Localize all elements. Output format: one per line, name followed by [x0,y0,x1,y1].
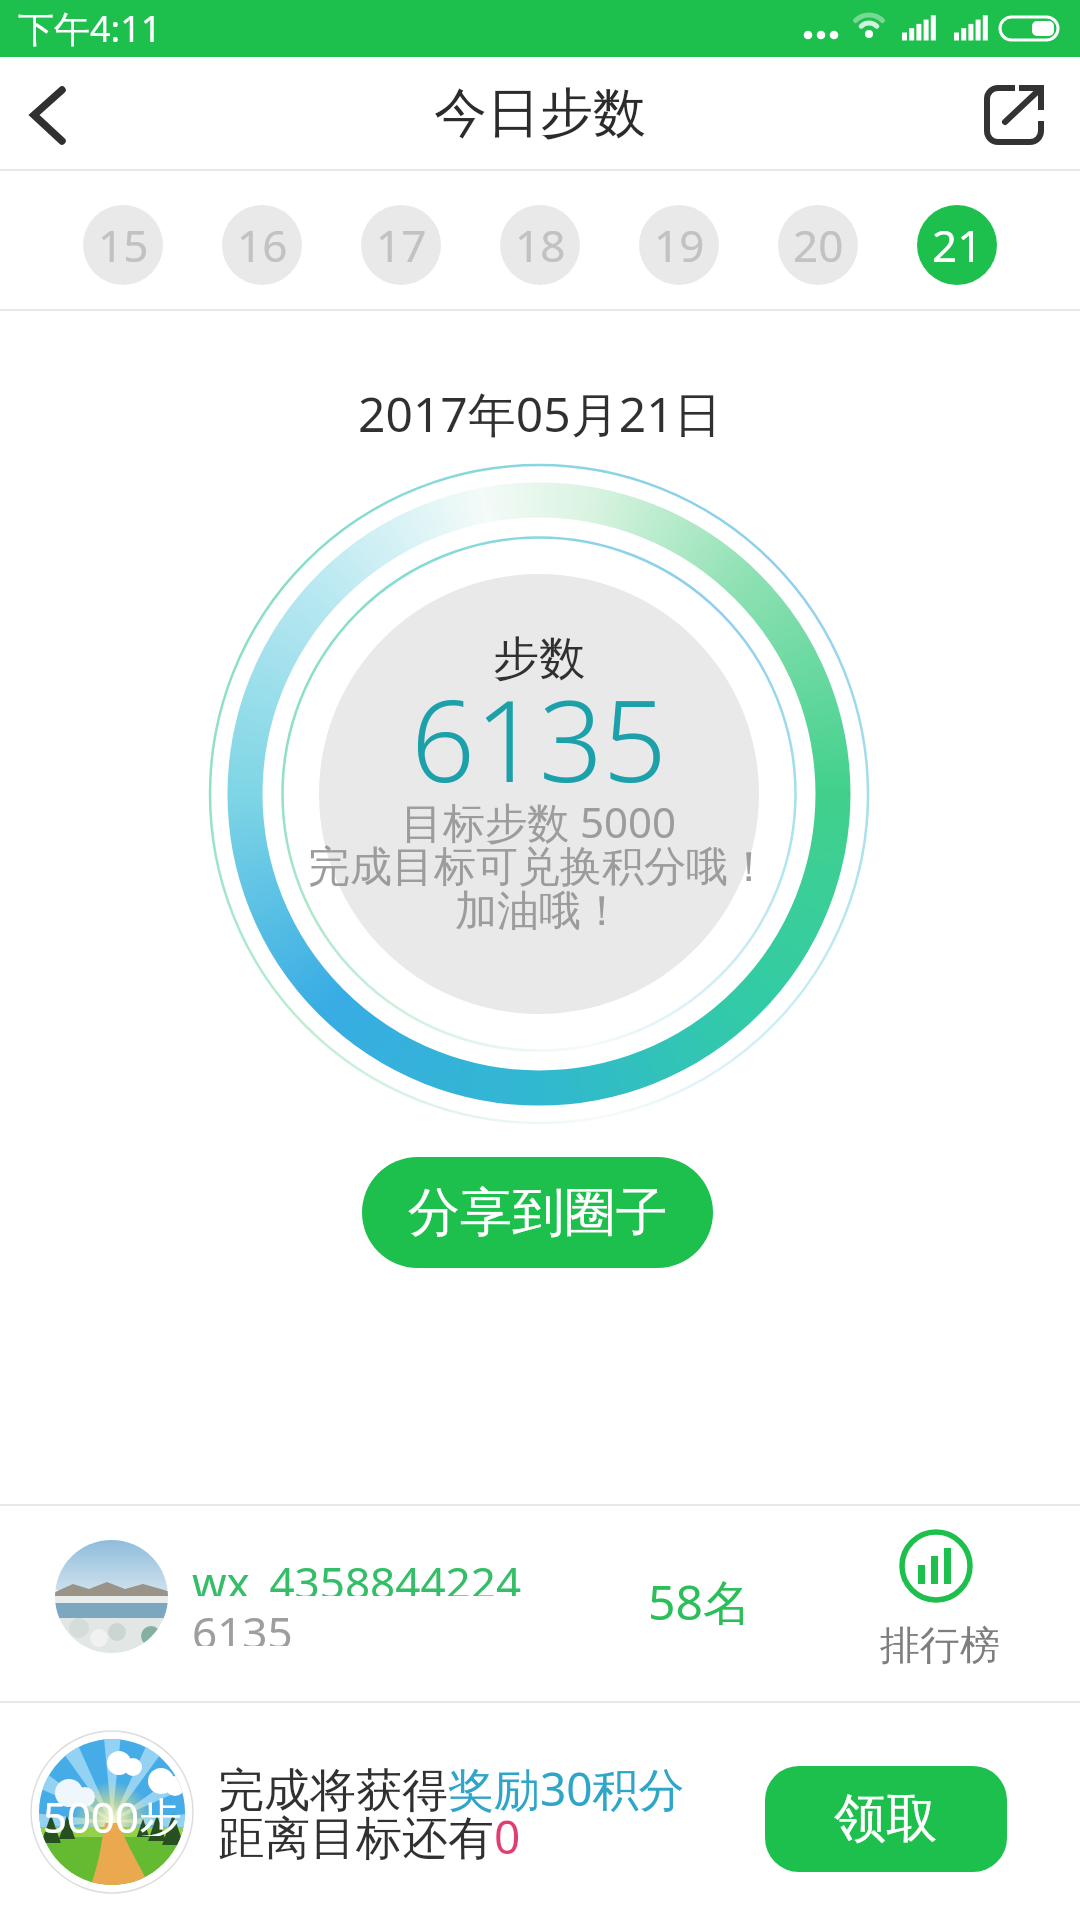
staticText: 分享到圈子 [408,1180,668,1246]
staticText: 领取 [834,1786,938,1852]
staticText: 加油哦！ [455,885,623,938]
button[interactable]: 15 [83,205,163,285]
button[interactable]: 18 [500,205,580,285]
button[interactable]: 17 [361,205,441,285]
staticText: 距离目标还有0 [218,1805,521,1865]
staticText: 18 [515,215,566,275]
staticText: 6135 [192,1602,293,1646]
staticText: 步数 [493,630,585,688]
staticText: 15 [98,215,149,275]
staticText: 下午4:11 [18,4,162,53]
staticText: 58名 [648,1569,751,1629]
button[interactable] [970,73,1065,157]
button[interactable] [10,73,100,157]
button[interactable]: 19 [639,205,719,285]
staticText: 21 [932,215,983,275]
button[interactable]: 16 [222,205,302,285]
staticText: 完成目标可兑换积分哦！ [308,841,770,894]
staticText: 2017年05月21日 [358,381,722,447]
button[interactable]: 21 [917,205,997,285]
button[interactable]: 领取 [765,1766,1007,1872]
staticText: 6135 [411,662,667,815]
button[interactable]: 分享到圈子 [362,1157,713,1268]
staticText: 17 [376,215,427,275]
staticText: 16 [237,215,288,275]
staticText: wx_4358844224 [192,1552,522,1596]
staticText: 目标步数 5000 [401,793,677,850]
staticText: 今日步数 [434,80,646,147]
staticText: 20 [793,215,844,275]
staticText: 排行榜 [880,1620,1000,1670]
staticText: 完成将获得奖励30积分 [218,1757,685,1817]
button[interactable]: 20 [778,205,858,285]
button[interactable]: wx_4358844224 [0,1506,1080,1701]
staticText: 19 [654,215,705,275]
staticText: 5000步 [43,1788,182,1836]
